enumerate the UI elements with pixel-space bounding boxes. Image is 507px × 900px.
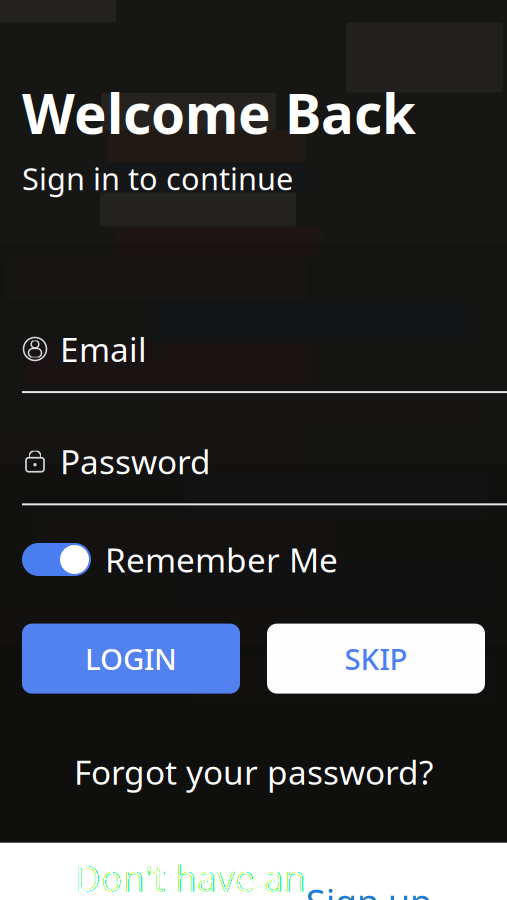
- staticText: LOGIN: [85, 639, 177, 678]
- staticText: Welcome Back: [22, 76, 416, 149]
- button[interactable]: LOGIN: [22, 624, 240, 694]
- staticText: Don't have an account?: [75, 854, 306, 900]
- staticText: Password: [60, 439, 211, 483]
- button[interactable]: Remember Me: [0, 537, 507, 582]
- staticText: SKIP: [344, 639, 407, 678]
- staticText: Remember Me: [105, 537, 338, 582]
- button[interactable]: SKIP: [267, 624, 485, 694]
- staticText: Sign up: [306, 878, 432, 900]
- staticText: Forgot your password?: [74, 750, 433, 794]
- staticText: Sign in to continue: [22, 158, 293, 199]
- button[interactable]: Sign up: [306, 878, 432, 900]
- button[interactable]: Forgot your password?: [74, 750, 433, 794]
- staticText: Email: [60, 327, 147, 371]
